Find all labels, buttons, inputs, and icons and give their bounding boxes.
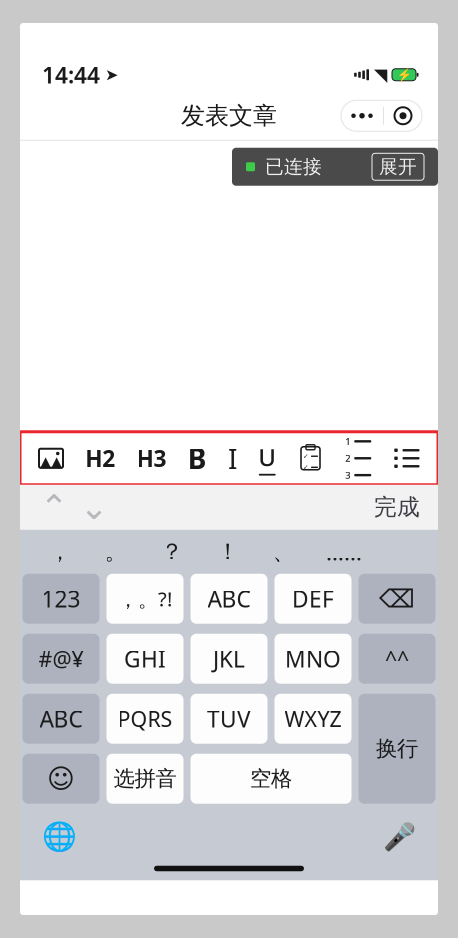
staticText: U — [258, 441, 276, 473]
staticText: I — [228, 440, 237, 477]
staticText: ，。?! — [118, 585, 172, 612]
staticText: 1 — [345, 435, 350, 448]
button[interactable]: #@¥ — [22, 634, 99, 684]
staticText: 展开 — [379, 155, 417, 178]
staticText: ✓ — [303, 452, 309, 460]
button[interactable]: H2 — [85, 443, 115, 473]
button[interactable]: WXYZ — [274, 694, 351, 744]
button[interactable]: …… — [312, 537, 376, 567]
staticText: ⌫ — [379, 584, 415, 613]
button[interactable]: Numbered list — [345, 447, 372, 469]
staticText: ABC — [39, 704, 82, 734]
button[interactable]: JKL — [190, 634, 267, 684]
button[interactable]: Italic — [228, 440, 237, 477]
button[interactable]: Emoji — [22, 754, 99, 804]
staticText: 3 — [345, 469, 350, 481]
staticText: ◥ — [374, 65, 387, 85]
button[interactable]: ， — [32, 538, 88, 566]
button[interactable]: ABC — [190, 574, 267, 624]
staticText: H2 — [85, 443, 115, 473]
button[interactable]: Underline — [258, 441, 276, 476]
staticText: 发表文章 — [181, 101, 277, 130]
staticText: JKL — [213, 644, 245, 674]
button[interactable]: Previous field — [34, 485, 74, 529]
staticText: 、 — [272, 538, 295, 566]
staticText: H3 — [136, 443, 166, 473]
staticText: ▲▲ — [40, 453, 62, 470]
button[interactable]: 完成 — [374, 493, 424, 521]
button[interactable]: 空格 — [190, 754, 351, 804]
button[interactable]: Bulleted list — [393, 447, 420, 469]
staticText: #@¥ — [38, 645, 83, 673]
button[interactable]: Bold — [188, 440, 207, 477]
staticText: MNO — [285, 644, 341, 674]
button[interactable]: Next field — [74, 485, 114, 529]
button[interactable]: GHI — [106, 634, 183, 684]
staticText: ⌃ — [39, 488, 68, 527]
staticText: 空格 — [250, 766, 292, 792]
button[interactable]: 换行 — [358, 694, 435, 804]
button[interactable]: ，。?! — [106, 574, 183, 624]
button[interactable]: ！ — [200, 538, 256, 566]
staticText: DEF — [292, 584, 334, 614]
staticText: B — [188, 440, 207, 477]
staticText: 14:44 — [42, 60, 100, 90]
staticText: PQRS — [117, 705, 172, 733]
staticText: ➤ — [105, 66, 118, 84]
button[interactable]: H3 — [136, 443, 166, 473]
staticText: ！ — [216, 538, 239, 566]
staticText: 已连接 — [265, 155, 322, 178]
staticText: TUV — [207, 704, 251, 734]
staticText: 🎤 — [382, 821, 415, 852]
staticText: 。 — [104, 538, 127, 566]
button[interactable]: ABC — [22, 694, 99, 744]
staticText: ， — [48, 538, 71, 566]
staticText: 完成 — [374, 493, 420, 521]
staticText: 🌐 — [41, 821, 76, 853]
button[interactable]: ？ — [144, 538, 200, 566]
staticText: ？ — [160, 538, 183, 566]
staticText: 换行 — [376, 736, 418, 762]
button[interactable]: PQRS — [106, 694, 183, 744]
staticText: ^^ — [385, 645, 409, 673]
staticText: 选拼音 — [113, 766, 176, 792]
staticText: WXYZ — [284, 705, 341, 733]
button[interactable]: Dictation — [376, 816, 422, 858]
staticText: ☺ — [47, 764, 75, 794]
button[interactable]: 、 — [256, 538, 312, 566]
staticText: 2 — [345, 452, 350, 464]
button[interactable]: More options and close — [341, 100, 422, 131]
staticText: ABC — [207, 584, 250, 614]
button[interactable]: 选拼音 — [106, 754, 183, 804]
button[interactable]: DEF — [274, 574, 351, 624]
staticText: ⚡ — [396, 68, 411, 82]
button[interactable]: Insert image — [38, 448, 64, 469]
button[interactable]: 123 — [22, 574, 99, 624]
button[interactable]: 。 — [88, 538, 144, 566]
button[interactable]: Delete — [358, 574, 435, 624]
button[interactable]: MNO — [274, 634, 351, 684]
staticText: …… — [326, 537, 362, 567]
staticText: ⌄ — [79, 488, 108, 527]
button[interactable]: 展开 — [372, 153, 424, 180]
staticText: ✓ — [303, 463, 309, 471]
staticText: GHI — [124, 644, 166, 674]
button[interactable]: Switch keyboard — [36, 816, 82, 858]
button[interactable]: ^^ — [358, 634, 435, 684]
button[interactable]: TUV — [190, 694, 267, 744]
button[interactable]: Checklist — [297, 445, 323, 471]
staticText: 123 — [41, 584, 80, 614]
